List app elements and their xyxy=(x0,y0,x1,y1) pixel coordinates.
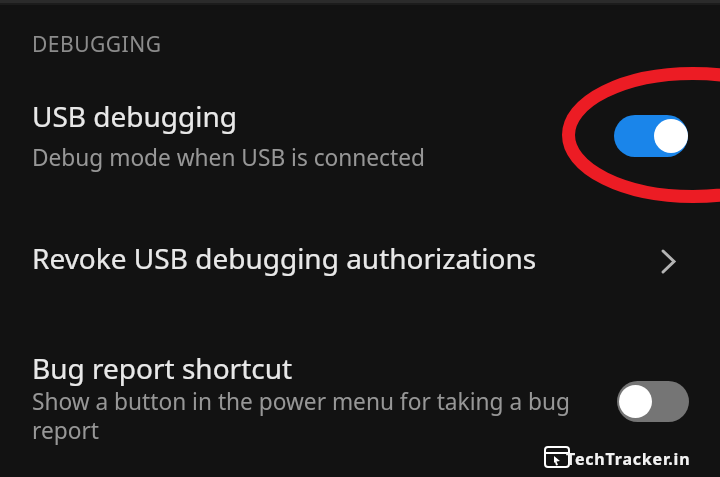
staticText: Bug report shortcut xyxy=(32,349,293,387)
button[interactable]: Revoke USB debugging authorizations xyxy=(0,225,720,303)
staticText: TechTracker.in xyxy=(566,448,691,470)
staticText: DEBUGGING xyxy=(32,30,162,59)
button[interactable]: USB debugging xyxy=(0,84,720,194)
staticText: USB debugging xyxy=(32,97,238,135)
staticText: Debug mode when USB is connected xyxy=(32,142,425,173)
button[interactable] xyxy=(617,381,689,422)
staticText: Show a button in the power menu for taki… xyxy=(32,386,570,417)
button[interactable] xyxy=(614,115,688,157)
staticText: report xyxy=(32,415,99,446)
button[interactable]: Bug report shortcut xyxy=(0,340,720,458)
staticText: Revoke USB debugging authorizations xyxy=(32,239,537,277)
